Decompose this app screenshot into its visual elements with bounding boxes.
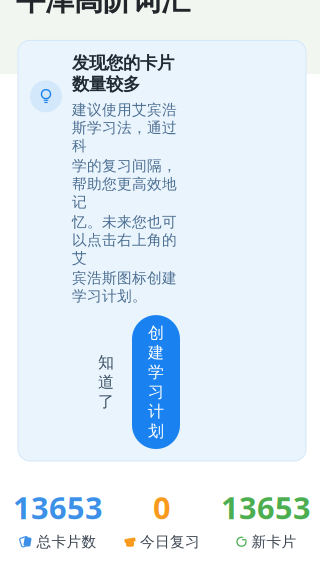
staticText: 13653 [13, 487, 103, 528]
staticText: 今日复习 [140, 533, 200, 551]
staticText: 总卡片数 [36, 533, 96, 551]
button[interactable]: 创建学习计划 [132, 315, 180, 449]
staticText: 牛津高阶词汇 [16, 0, 190, 18]
staticText: 发现您的卡片数量较多 [72, 52, 174, 95]
staticText: 13653 [221, 487, 311, 528]
staticText: 创建学习计划 [148, 323, 164, 441]
staticText: 新卡片 [251, 533, 296, 551]
staticText: 知道了 [98, 353, 114, 412]
staticText: 建议使用艾宾浩斯学习法，通过科 [72, 101, 177, 155]
staticText: 0 [153, 487, 171, 528]
button[interactable]: 知道了 [88, 346, 124, 419]
staticText: 宾浩斯图标创建学习计划。 [72, 269, 177, 305]
staticText: 忆。未来您也可以点击右上角的艾 [72, 213, 177, 267]
staticText: 学的复习间隔，帮助您更高效地记 [72, 157, 177, 211]
